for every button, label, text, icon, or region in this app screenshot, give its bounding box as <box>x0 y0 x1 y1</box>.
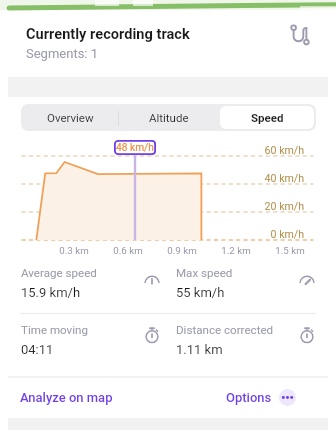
staticText: 0.3 km <box>44 245 104 256</box>
staticText: 55 km/h <box>176 285 225 300</box>
staticText: Currently recording track <box>26 25 190 42</box>
staticText: 40 km/h <box>249 172 304 184</box>
staticText: Max speed <box>176 266 233 280</box>
staticText: 0.6 km <box>98 245 158 256</box>
staticText: Segments: 1 <box>26 46 99 61</box>
button[interactable]: Speed <box>220 106 314 129</box>
staticText: Distance corrected <box>176 323 274 337</box>
staticText: 1.5 km <box>260 245 320 256</box>
staticText: Overview <box>47 111 94 124</box>
staticText: 15.9 km/h <box>21 285 81 300</box>
staticText: Speed <box>251 111 284 124</box>
staticText: Altitude <box>149 111 189 124</box>
staticText: 0.9 km <box>152 245 212 256</box>
button[interactable]: Options <box>226 384 296 410</box>
button[interactable] <box>170 261 317 303</box>
staticText: Time moving <box>21 323 88 337</box>
button[interactable]: Overview <box>23 106 118 129</box>
staticText: Options <box>226 390 272 405</box>
button[interactable]: Track details <box>283 18 317 52</box>
button[interactable] <box>15 318 162 360</box>
staticText: 04:11 <box>21 342 54 357</box>
staticText: 20 km/h <box>249 200 304 212</box>
staticText: 0 km/h <box>249 228 304 240</box>
staticText: 60 km/h <box>249 144 304 156</box>
button[interactable]: Analyze on map <box>12 384 121 410</box>
button[interactable] <box>15 261 162 303</box>
staticText: Average speed <box>21 266 97 280</box>
staticText: 48 km/h <box>116 142 154 154</box>
staticText: 1.2 km <box>206 245 266 256</box>
staticText: Analyze on map <box>20 390 113 405</box>
button[interactable] <box>170 318 317 360</box>
button[interactable]: Altitude <box>122 106 216 129</box>
staticText: 1.11 km <box>176 342 223 357</box>
